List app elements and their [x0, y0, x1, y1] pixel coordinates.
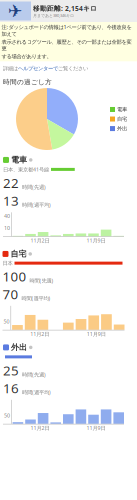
staticText: 11月2日 [30, 424, 49, 431]
staticText: 11月2日 [30, 237, 49, 244]
staticText: 50 [3, 318, 9, 325]
staticText: 電車 [117, 106, 127, 113]
staticText: 13 [3, 192, 19, 209]
staticText: 外出 [11, 342, 27, 352]
staticText: する場合があります。 [1, 53, 51, 60]
staticText: 注: ダッシュボードの情報は1ページ前であり、今後改良を加えて [1, 23, 131, 37]
staticText: 時間(先週) [22, 184, 46, 191]
staticText: 時間(週平均) [22, 389, 51, 396]
staticText: 外出 [117, 125, 127, 132]
staticText: ヘルプセンターで [18, 65, 58, 72]
staticText: 時間の過ごし方 [3, 78, 52, 86]
staticText: 日本、東京都41号線 [3, 166, 49, 173]
staticText: ご覧ください [58, 65, 88, 72]
staticText: 25 [3, 361, 19, 379]
staticText: 表示されるログツール、履歴と、その一部または全部を変更 [1, 39, 131, 52]
staticText: 70 [2, 285, 18, 303]
staticText: 詳細は [3, 65, 18, 72]
staticText: 自宅 [117, 116, 127, 122]
staticText: 移動距離: 2,154キロ [33, 4, 97, 13]
staticText: 電車 [11, 155, 27, 165]
staticText: 50 [4, 412, 10, 419]
staticText: 10 [4, 224, 10, 231]
staticText: 時間(週平均) [22, 201, 51, 208]
staticText: 16 [3, 379, 19, 397]
staticText: 11月9日 [86, 237, 105, 244]
staticText: 時間(先週) [22, 371, 46, 378]
staticText: 11月9日 [86, 424, 105, 431]
staticText: 11月2日 [30, 330, 49, 337]
staticText: 月まであと380,346キロ [33, 13, 74, 18]
staticText: 時間(週平均) [21, 295, 50, 302]
staticText: 40 [4, 212, 10, 219]
staticText: 100 [2, 267, 26, 285]
staticText: ✈ [8, 1, 23, 21]
staticText: 自宅 [10, 249, 26, 259]
staticText: 時間(先週) [29, 277, 53, 284]
staticText: 日本 [2, 260, 12, 266]
staticText: 22 [3, 174, 19, 192]
staticText: 11月9日 [87, 330, 106, 337]
